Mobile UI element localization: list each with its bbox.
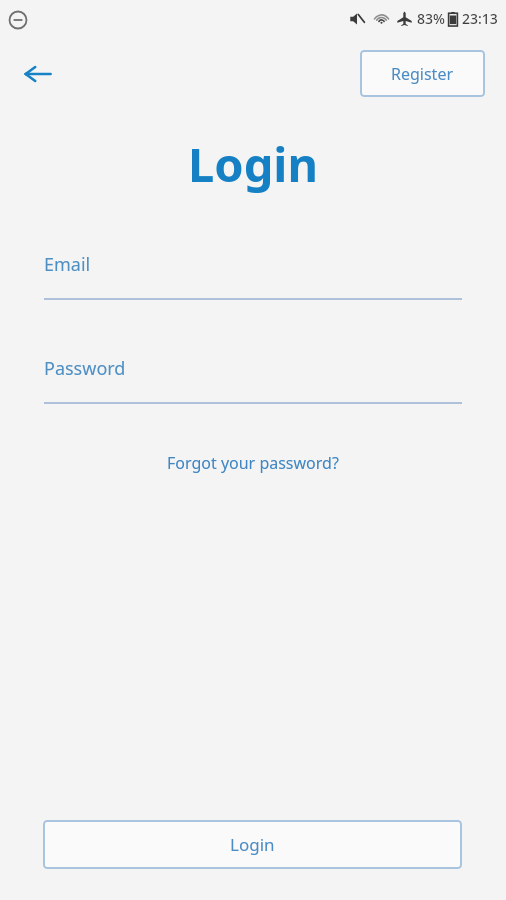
staticText: Login	[188, 132, 318, 196]
staticText: Register	[391, 63, 454, 85]
staticText: Login	[230, 833, 275, 856]
button[interactable]: Login	[43, 820, 462, 869]
button[interactable]: Forgot your password?	[157, 446, 349, 480]
button[interactable]: Back	[14, 50, 62, 98]
button[interactable]: Email	[44, 252, 462, 300]
staticText: 83%	[417, 9, 445, 28]
button[interactable]: Password	[44, 356, 462, 404]
staticText: 23:13	[462, 9, 498, 28]
staticText: Forgot your password?	[167, 452, 339, 474]
staticText: Password	[44, 356, 126, 381]
button[interactable]: Register	[360, 50, 485, 97]
staticText: Email	[44, 252, 91, 277]
